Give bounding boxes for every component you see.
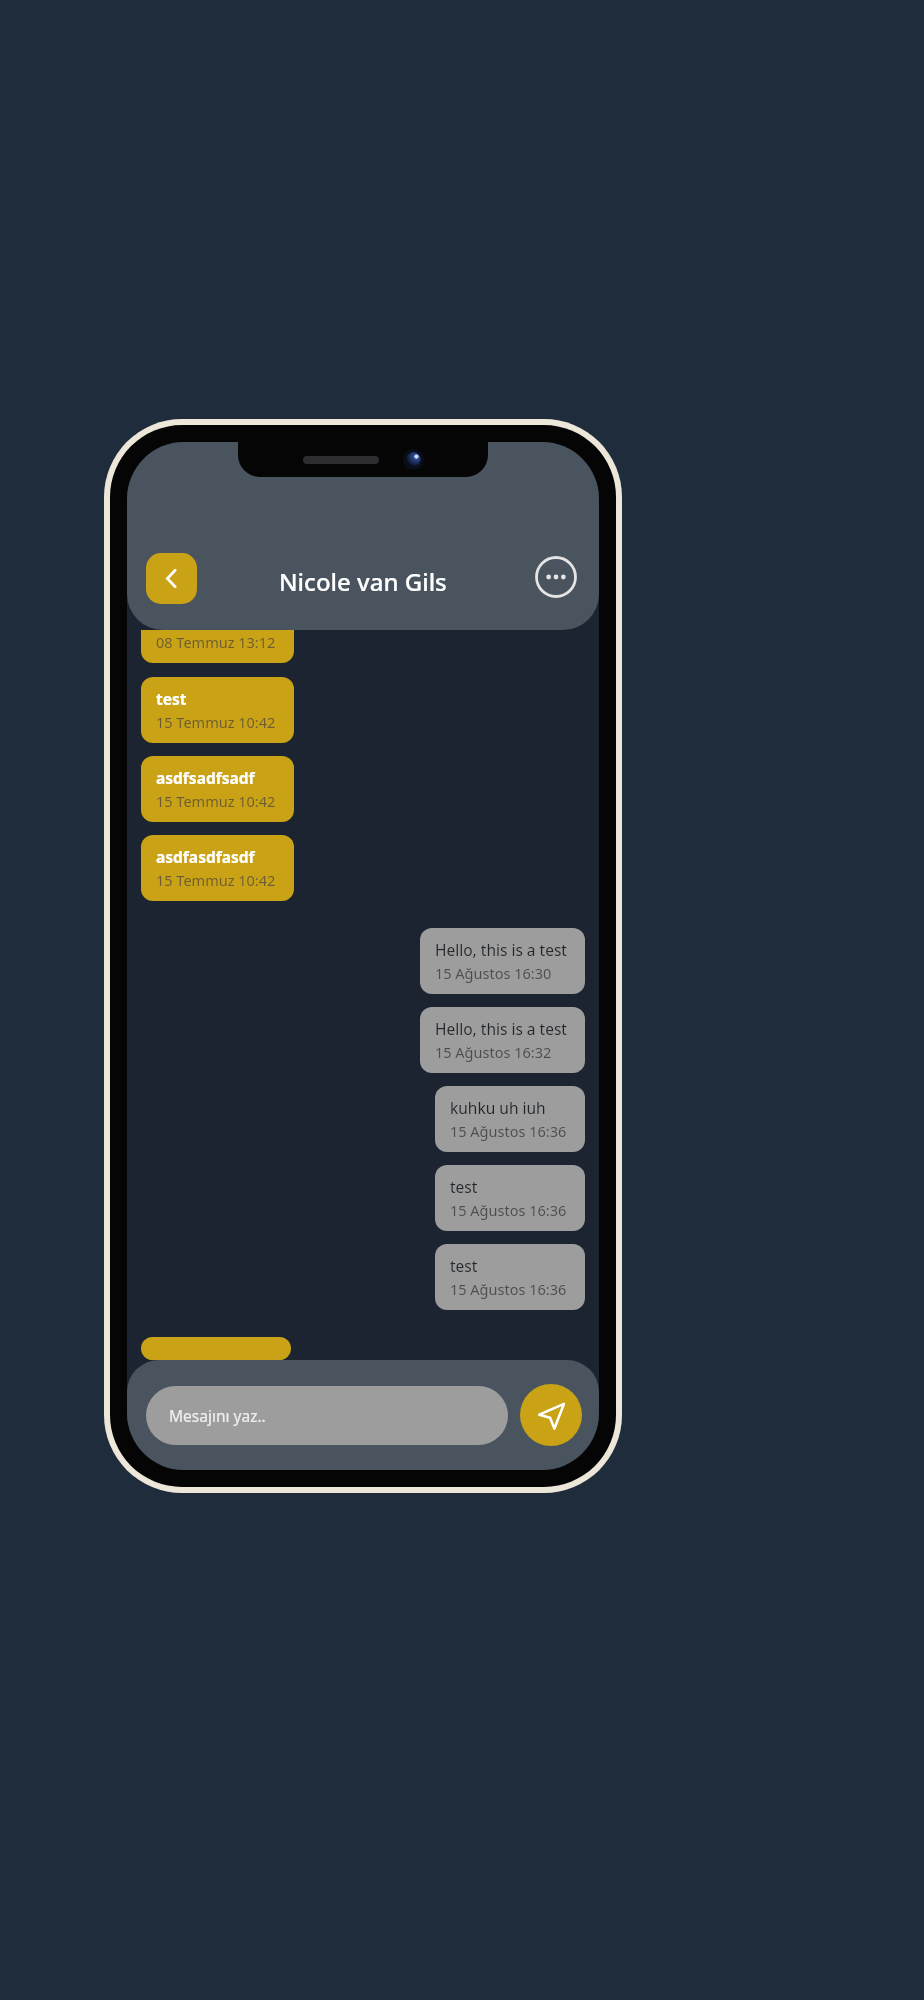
staticText: 15 Ağustos 16:30 xyxy=(435,963,552,983)
staticText: 15 Ağustos 16:36 xyxy=(450,1121,567,1141)
button[interactable]: More options xyxy=(535,556,577,598)
button[interactable]: asdfsadfsadf xyxy=(141,756,294,822)
staticText: test xyxy=(450,1255,478,1276)
staticText: 08 Temmuz 13:12 xyxy=(156,632,276,652)
button[interactable]: Hello, this is a test xyxy=(420,1007,585,1073)
button[interactable]: Back xyxy=(146,553,197,604)
staticText: 15 Ağustos 16:32 xyxy=(435,1042,552,1062)
staticText: Hello, this is a test xyxy=(435,939,567,960)
staticText: 15 Ağustos 16:36 xyxy=(450,1200,567,1220)
button[interactable]: Send xyxy=(520,1384,582,1446)
staticText: Hello, this is a test xyxy=(435,1018,567,1039)
button[interactable]: hallo xyxy=(141,1337,291,1360)
staticText: kuhku uh iuh xyxy=(450,1097,546,1118)
staticText: Mesajını yaz.. xyxy=(169,1405,266,1426)
staticText: asdfsadfsadf xyxy=(156,767,255,788)
staticText: 15 Ağustos 16:36 xyxy=(450,1279,567,1299)
button[interactable]: test xyxy=(435,1244,585,1310)
staticText: 15 Temmuz 10:42 xyxy=(156,712,276,732)
staticText: test xyxy=(156,688,187,709)
button[interactable]: kuhku uh iuh xyxy=(435,1086,585,1152)
staticText: asdfasdfasdf xyxy=(156,846,255,867)
staticText: 15 Temmuz 10:42 xyxy=(156,791,276,811)
button[interactable]: test xyxy=(141,677,294,743)
staticText: test xyxy=(450,1176,478,1197)
button[interactable]: Mesajını yaz.. xyxy=(146,1386,508,1445)
button[interactable]: Hello, this is a test xyxy=(420,928,585,994)
button[interactable]: 08 Temmuz 13:12 xyxy=(141,630,294,663)
button[interactable]: test xyxy=(435,1165,585,1231)
staticText: Nicole van Gils xyxy=(279,565,447,598)
button[interactable]: asdfasdfasdf xyxy=(141,835,294,901)
staticText: 15 Temmuz 10:42 xyxy=(156,870,276,890)
